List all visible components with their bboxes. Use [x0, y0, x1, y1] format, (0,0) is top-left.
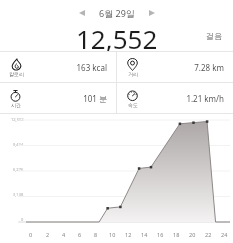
staticText: 8 [94, 231, 98, 238]
staticText: 6 [78, 231, 82, 238]
staticText: 24 [221, 231, 228, 238]
staticText: 12,552 [11, 117, 24, 122]
button[interactable]: Next day [144, 5, 160, 21]
staticText: 시간 [11, 102, 21, 108]
staticText: 3,138 [13, 192, 24, 197]
staticText: 12,552 [76, 21, 158, 51]
staticText: 1.21 km/h [139, 93, 224, 104]
button[interactable]: 거리 [117, 52, 233, 82]
button[interactable]: 시간 [0, 83, 116, 113]
staticText: 12 [125, 231, 132, 238]
staticText: 16 [157, 231, 164, 238]
staticText: 20 [189, 231, 196, 238]
staticText: 2 [46, 231, 50, 238]
staticText: 0 [29, 231, 33, 238]
staticText: 0 [21, 217, 24, 222]
button[interactable]: Previous day [74, 5, 90, 21]
staticText: 6,276 [13, 167, 24, 172]
staticText: 101 분 [22, 93, 107, 104]
staticText: 14 [141, 231, 148, 238]
staticText: 속도 [128, 102, 138, 108]
staticText: 22 [205, 231, 212, 238]
staticText: 18 [173, 231, 180, 238]
staticText: 칼로리 [9, 71, 24, 77]
staticText: 7.28 km [139, 62, 224, 73]
staticText: 걸음 [206, 31, 222, 41]
button[interactable]: 속도 [117, 83, 233, 113]
button[interactable]: 칼로리 [0, 52, 116, 82]
staticText: 거리 [128, 71, 138, 77]
staticText: 163 kcal [24, 62, 107, 73]
staticText: 10 [109, 231, 116, 238]
staticText: 6월 29일 [99, 7, 135, 19]
staticText: 4 [62, 231, 66, 238]
staticText: 9,414 [13, 142, 24, 147]
